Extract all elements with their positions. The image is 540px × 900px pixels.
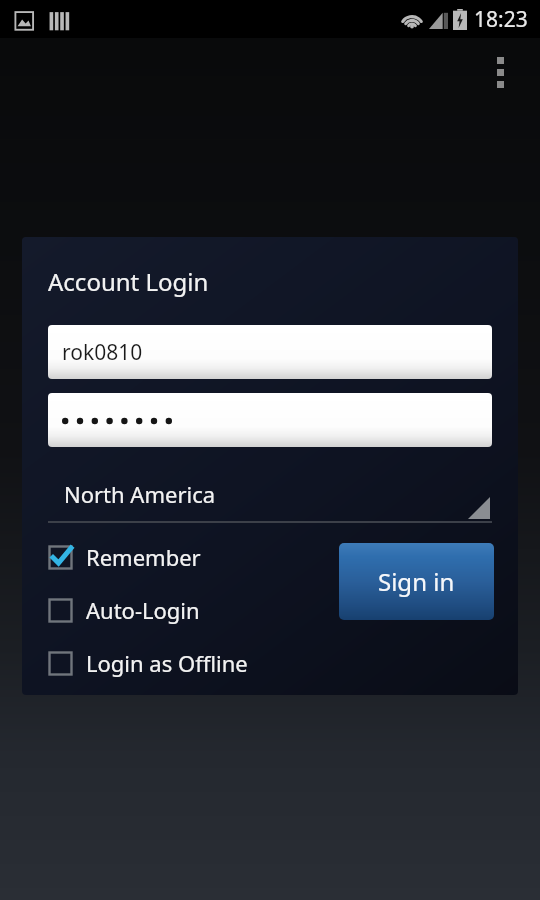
staticText: Remember <box>86 542 201 572</box>
staticText: Auto-Login <box>86 595 200 625</box>
staticText: Sign in <box>378 565 455 598</box>
button[interactable]: More options <box>476 45 524 99</box>
staticText: Account Login <box>48 265 209 298</box>
button[interactable] <box>48 393 492 447</box>
staticText: North America <box>64 479 216 509</box>
button[interactable]: North America <box>48 471 492 523</box>
button[interactable]: Sign in <box>339 543 494 620</box>
staticText: rok0810 <box>62 338 143 367</box>
button[interactable]: rok0810 <box>48 325 492 379</box>
staticText: 18:23 <box>474 5 528 34</box>
staticText: Login as Offline <box>86 648 248 678</box>
button[interactable]: Remember <box>48 540 201 574</box>
button[interactable]: Auto-Login <box>48 593 200 627</box>
button[interactable]: Login as Offline <box>48 646 248 680</box>
